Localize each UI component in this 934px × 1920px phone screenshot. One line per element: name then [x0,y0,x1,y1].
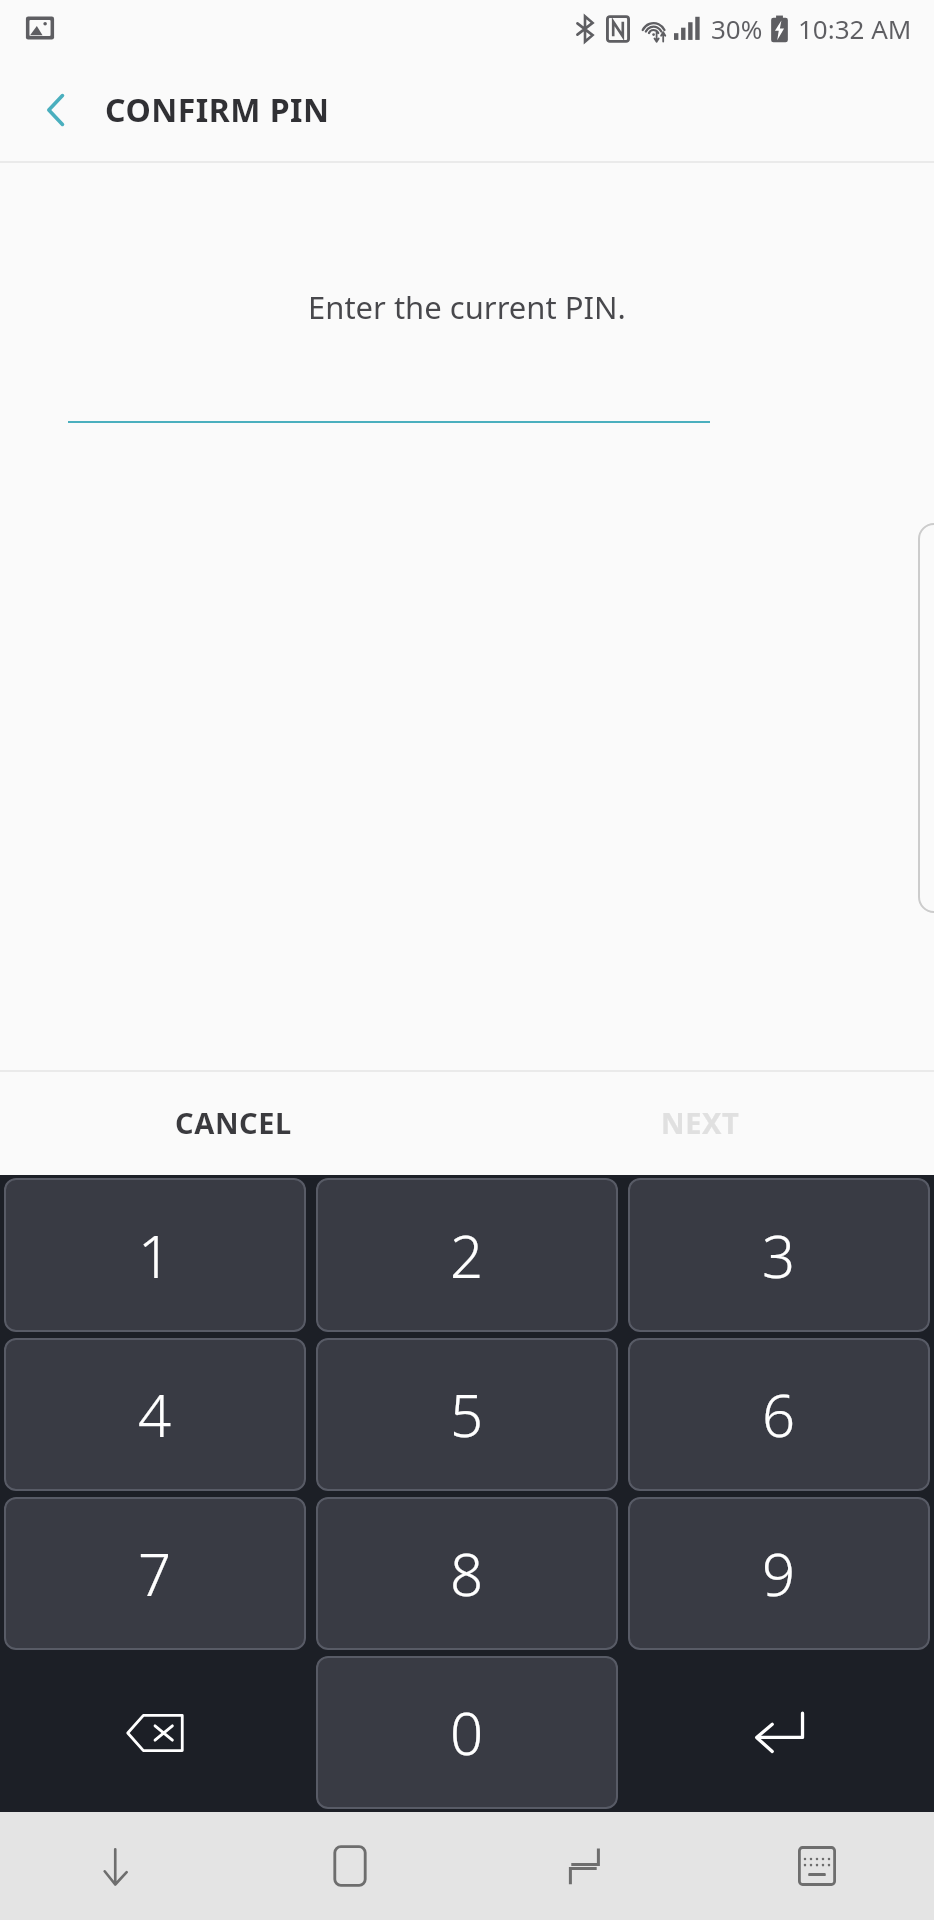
button[interactable]: Hide keyboard [42,1812,192,1920]
staticText: NEXT [661,1103,740,1142]
staticText: 9 [762,1534,796,1613]
button[interactable]: 6 [628,1338,930,1491]
button[interactable]: 0 [316,1656,618,1809]
staticText: 7 [138,1534,172,1613]
staticText: 10:32 AM [798,11,912,46]
button[interactable]: 1 [4,1178,306,1332]
staticText: 5 [450,1375,484,1454]
staticText: 3 [762,1216,796,1295]
button[interactable]: Home [275,1812,425,1920]
staticText: 8 [450,1534,484,1613]
button[interactable]: Back [20,74,92,146]
button[interactable]: CANCEL [0,1070,467,1175]
staticText: 30% [711,11,763,46]
staticText: CONFIRM PIN [105,88,330,132]
button[interactable]: 9 [628,1497,930,1650]
staticText: Enter the current PIN. [308,286,626,328]
staticText: 4 [138,1375,172,1454]
button[interactable]: Switch keyboard [742,1812,892,1920]
button[interactable]: Enter [628,1656,930,1809]
staticText: 2 [450,1216,484,1295]
staticText: 6 [762,1375,796,1454]
button[interactable]: Recents [509,1812,659,1920]
button[interactable]: Delete [4,1656,306,1809]
staticText: 0 [450,1693,484,1772]
staticText: CANCEL [175,1103,292,1142]
button[interactable]: 4 [4,1338,306,1491]
staticText: 1 [138,1216,172,1295]
button[interactable]: 5 [316,1338,618,1491]
button[interactable]: 8 [316,1497,618,1650]
button[interactable]: 7 [4,1497,306,1650]
button[interactable]: NEXT [467,1070,934,1175]
button[interactable]: 3 [628,1178,930,1332]
button[interactable]: 2 [316,1178,618,1332]
